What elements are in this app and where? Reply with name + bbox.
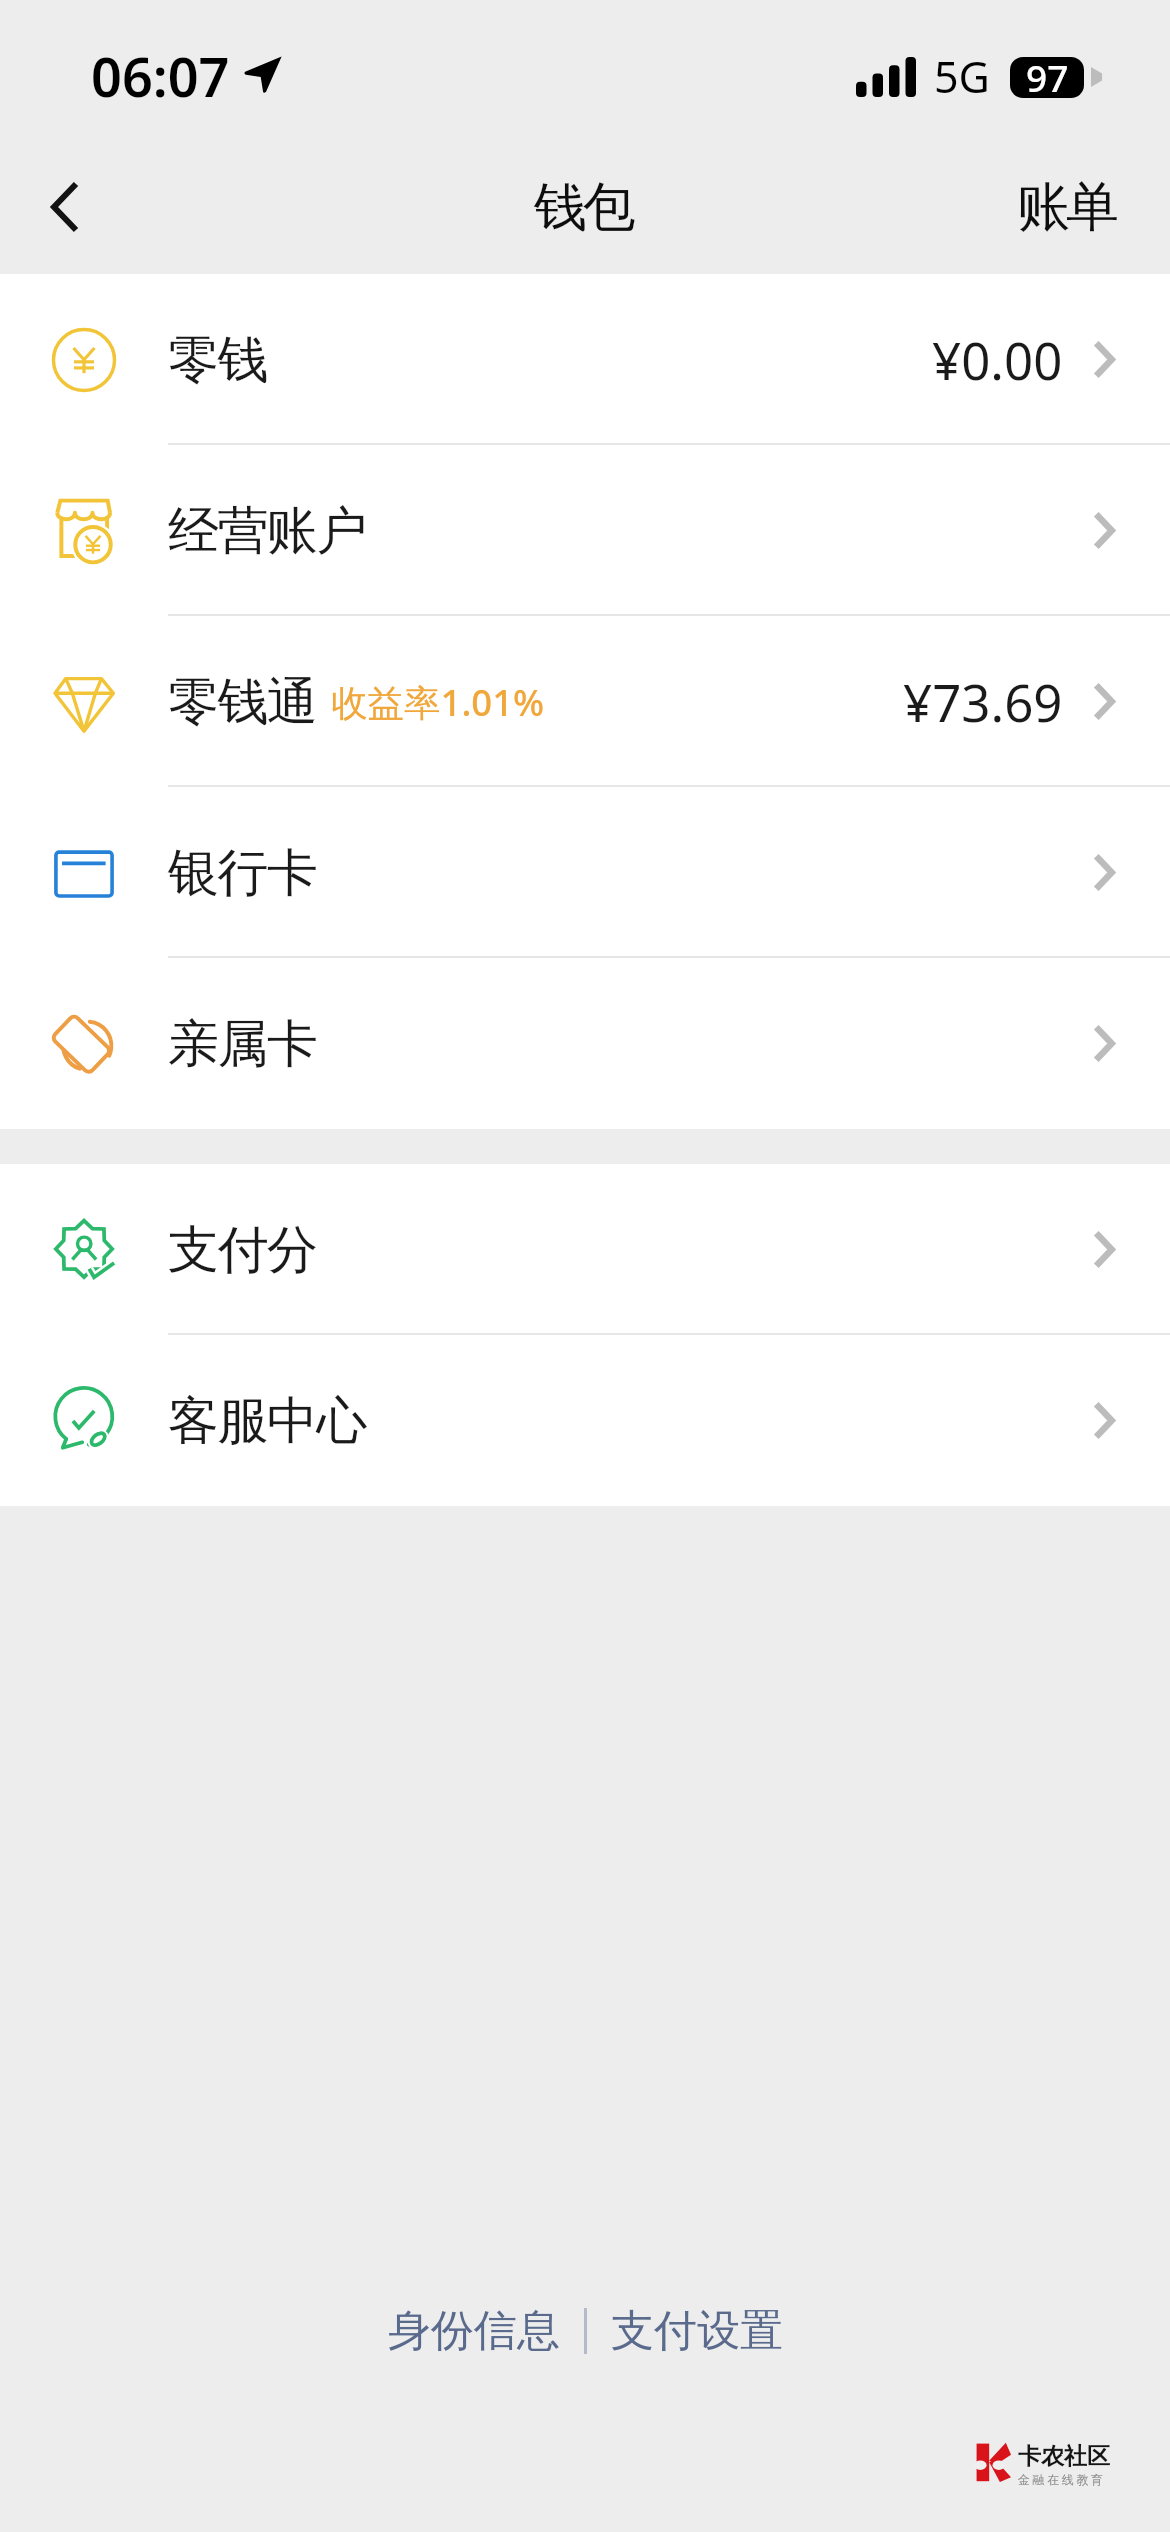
staticText: 97	[1026, 52, 1069, 102]
button[interactable]: 支付分	[0, 1164, 1170, 1335]
staticText: 零钱	[168, 328, 267, 392]
staticText: 客服中心	[168, 1389, 366, 1453]
staticText: 经营账户	[168, 499, 366, 563]
button[interactable]: 客服中心	[0, 1335, 1170, 1506]
staticText: 账单	[1019, 174, 1117, 241]
staticText: 支付设置	[611, 2304, 783, 2358]
staticText: 支付分	[168, 1218, 317, 1282]
staticText: 身份信息	[388, 2304, 560, 2358]
button[interactable]: 银行卡	[0, 787, 1170, 958]
staticText: 收益率1.01%	[331, 677, 545, 727]
staticText: 银行卡	[168, 841, 317, 905]
button[interactable]: 零钱	[0, 274, 1170, 445]
staticText: 卡农社区	[1018, 2442, 1110, 2471]
staticText: 06:07	[91, 39, 230, 113]
button[interactable]: 经营账户	[0, 445, 1170, 616]
staticText: ¥0.00	[932, 325, 1063, 394]
staticText: 亲属卡	[168, 1012, 317, 1076]
staticText: 零钱通	[168, 670, 317, 734]
button[interactable]: Back	[0, 150, 128, 274]
staticText: 5G	[934, 47, 990, 106]
button[interactable]: 零钱通	[0, 616, 1170, 787]
staticText: 金融在线教育	[1018, 2472, 1106, 2487]
staticText: 钱包	[536, 174, 634, 241]
staticText: ¥73.69	[903, 667, 1063, 736]
button[interactable]: 支付设置	[611, 2304, 783, 2358]
button[interactable]: 账单	[1019, 150, 1117, 274]
button[interactable]: 身份信息	[388, 2304, 560, 2358]
button[interactable]: 亲属卡	[0, 958, 1170, 1129]
